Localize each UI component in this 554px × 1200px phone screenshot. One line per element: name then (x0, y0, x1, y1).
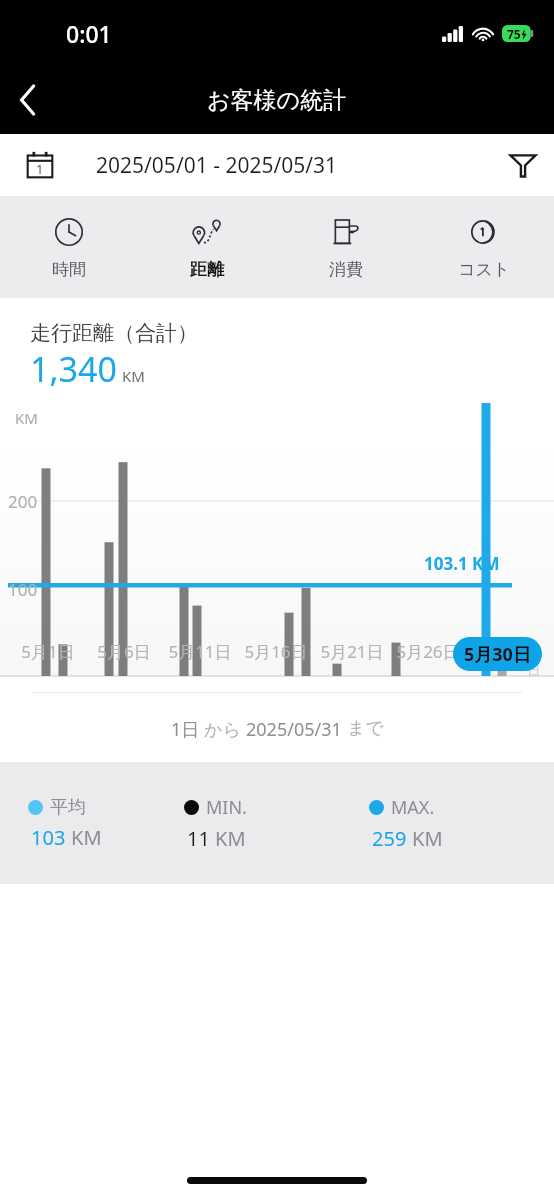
staticText: から (204, 717, 246, 742)
staticText: 1日 (171, 717, 204, 742)
staticText: 1 (36, 160, 44, 178)
staticText: 2025/05/31 (246, 717, 347, 742)
button[interactable]: MAX. (369, 795, 554, 852)
staticText: 消費 (329, 259, 363, 280)
staticText: 103 (31, 824, 66, 851)
button[interactable]: 1 (0, 134, 492, 196)
staticText: 1,340 (30, 346, 117, 392)
button[interactable]: コスト (415, 196, 554, 298)
staticText: KM (15, 408, 38, 428)
staticText: 2025/05/01 - 2025/05/31 (96, 151, 338, 180)
staticText: お客様の統計 (207, 86, 347, 115)
staticText: 5月16日 (244, 640, 308, 663)
staticText: KM (412, 825, 443, 852)
staticText: 日 (527, 662, 541, 680)
staticText: 時間 (52, 259, 86, 280)
staticText: MAX. (391, 795, 435, 820)
staticText: 200 (8, 490, 38, 513)
button[interactable]: 時間 (0, 196, 138, 298)
staticText: 走行距離（合計） (30, 320, 198, 346)
staticText: 100 (8, 578, 38, 601)
staticText: 5月11日 (168, 640, 232, 663)
staticText: 75 (507, 26, 521, 42)
staticText: コスト (458, 259, 511, 280)
staticText: 平均 (50, 796, 86, 819)
button[interactable]: 平均 (28, 796, 184, 851)
staticText: KM (71, 824, 102, 851)
staticText: 103.1 KM (424, 552, 500, 575)
staticText: KM (122, 366, 145, 386)
button[interactable]: 距離 (138, 196, 276, 298)
staticText: 距離 (190, 259, 224, 280)
staticText: KM (215, 825, 246, 852)
button[interactable]: 5月30日 (453, 637, 542, 671)
staticText: 5月21日 (320, 640, 384, 663)
button[interactable]: Back (0, 72, 56, 128)
button[interactable]: Filter (492, 134, 554, 196)
button[interactable]: MIN. (184, 795, 369, 852)
staticText: 11 (187, 825, 210, 852)
staticText: 5月6日 (97, 640, 151, 663)
staticText: 5月26日 (396, 640, 460, 663)
staticText: 5月1日 (21, 640, 75, 663)
staticText: 5月30日 (464, 642, 531, 667)
button[interactable]: 消費 (276, 196, 415, 298)
staticText: MIN. (206, 795, 247, 820)
staticText: 259 (372, 825, 407, 852)
staticText: まで (347, 717, 384, 740)
staticText: 0:01 (66, 18, 112, 49)
